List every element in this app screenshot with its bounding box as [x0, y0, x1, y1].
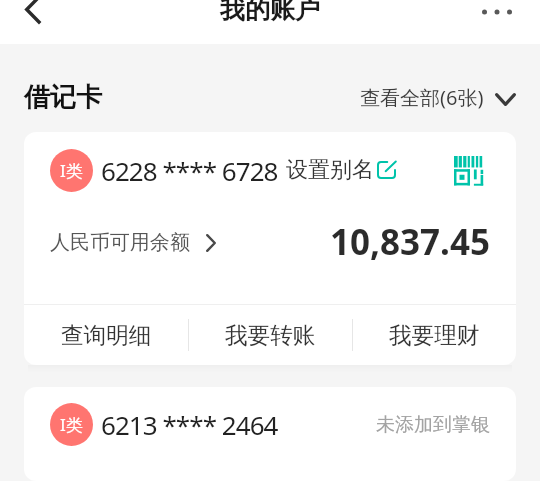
- staticText: 未添加到掌银: [376, 413, 490, 437]
- staticText: 我的账户: [220, 0, 320, 25]
- button[interactable]: Back: [12, 0, 52, 29]
- staticText: I类: [60, 413, 83, 436]
- button[interactable]: Scan code: [448, 150, 488, 190]
- staticText: 设置别名: [286, 156, 374, 184]
- staticText: 我要理财: [389, 321, 480, 349]
- staticText: 查询明细: [61, 321, 152, 349]
- staticText: 借记卡: [24, 81, 102, 114]
- staticText: 我要转账: [225, 321, 316, 349]
- button[interactable]: More options: [477, 2, 517, 22]
- button[interactable]: 我要理财: [353, 305, 516, 365]
- button[interactable]: 查询明细: [24, 305, 188, 365]
- button[interactable]: 我要转账: [189, 305, 352, 365]
- button[interactable]: 人民币可用余额: [50, 230, 216, 255]
- button[interactable]: 设置别名: [286, 156, 396, 184]
- staticText: 人民币可用余额: [50, 230, 190, 255]
- staticText: 6228 **** 6728: [101, 153, 278, 188]
- staticText: I类: [60, 159, 83, 182]
- staticText: 10,837.45: [330, 218, 490, 266]
- staticText: 6213 **** 2464: [101, 407, 278, 442]
- staticText: 查看全部(6张): [360, 84, 484, 111]
- button[interactable]: 查看全部(6张): [360, 84, 516, 111]
